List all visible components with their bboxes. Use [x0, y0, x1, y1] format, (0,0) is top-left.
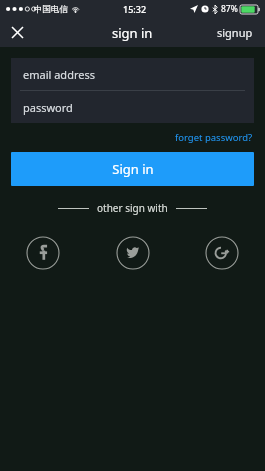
- button[interactable]: Sign in with Facebook: [26, 236, 60, 270]
- staticText: other sign with: [97, 201, 168, 215]
- button[interactable]: password: [11, 91, 254, 123]
- staticText: password: [23, 100, 73, 115]
- button[interactable]: Close: [0, 18, 34, 47]
- button[interactable]: forget password?: [163, 123, 265, 152]
- staticText: 87%: [221, 3, 238, 15]
- staticText: email address: [23, 67, 95, 82]
- button[interactable]: Sign in: [11, 152, 254, 186]
- staticText: Sign in: [112, 160, 154, 178]
- staticText: 中国电信: [34, 4, 68, 15]
- staticText: forget password?: [175, 131, 253, 144]
- button[interactable]: email address: [11, 58, 254, 90]
- staticText: 15:32: [123, 3, 147, 15]
- staticText: sign in: [112, 24, 153, 42]
- button[interactable]: Sign in with Google: [205, 236, 239, 270]
- button[interactable]: Sign in with Twitter: [116, 236, 150, 270]
- staticText: signup: [217, 25, 253, 40]
- button[interactable]: signup: [205, 19, 265, 46]
